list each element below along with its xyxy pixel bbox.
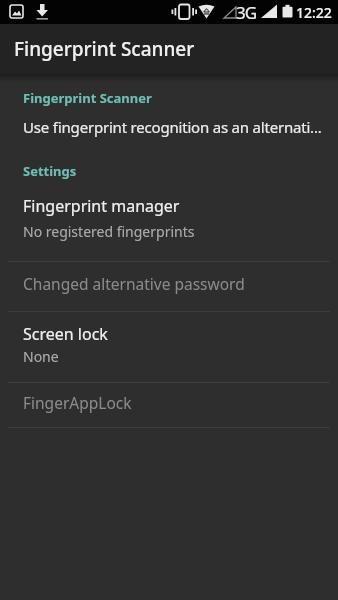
staticText: Screen lock <box>23 323 108 345</box>
staticText: Fingerprint Scanner <box>23 89 152 107</box>
staticText: FingerAppLock <box>23 392 132 413</box>
staticText: No registered fingerprints <box>23 222 195 241</box>
staticText: Settings <box>23 162 77 180</box>
button[interactable]: Use fingerprint recognition as an altern… <box>0 112 338 146</box>
staticText: Changed alternative password <box>23 273 245 294</box>
staticText: None <box>23 347 59 366</box>
staticText: Use fingerprint recognition as an altern… <box>23 117 322 137</box>
button[interactable]: Changed alternative password <box>0 262 338 311</box>
staticText: Fingerprint Scanner <box>14 36 195 62</box>
staticText: Fingerprint manager <box>23 195 180 217</box>
staticText: 12:22 <box>296 3 332 22</box>
button[interactable]: Screen lock <box>0 312 338 382</box>
staticText: 3G <box>236 1 257 24</box>
button[interactable]: FingerAppLock <box>0 383 338 427</box>
button[interactable]: Fingerprint manager <box>0 190 338 261</box>
